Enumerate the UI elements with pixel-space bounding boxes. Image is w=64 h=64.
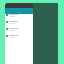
button[interactable]	[5, 28, 57, 35]
button[interactable]	[5, 21, 57, 28]
button[interactable]	[5, 35, 57, 42]
button[interactable]	[5, 14, 57, 21]
